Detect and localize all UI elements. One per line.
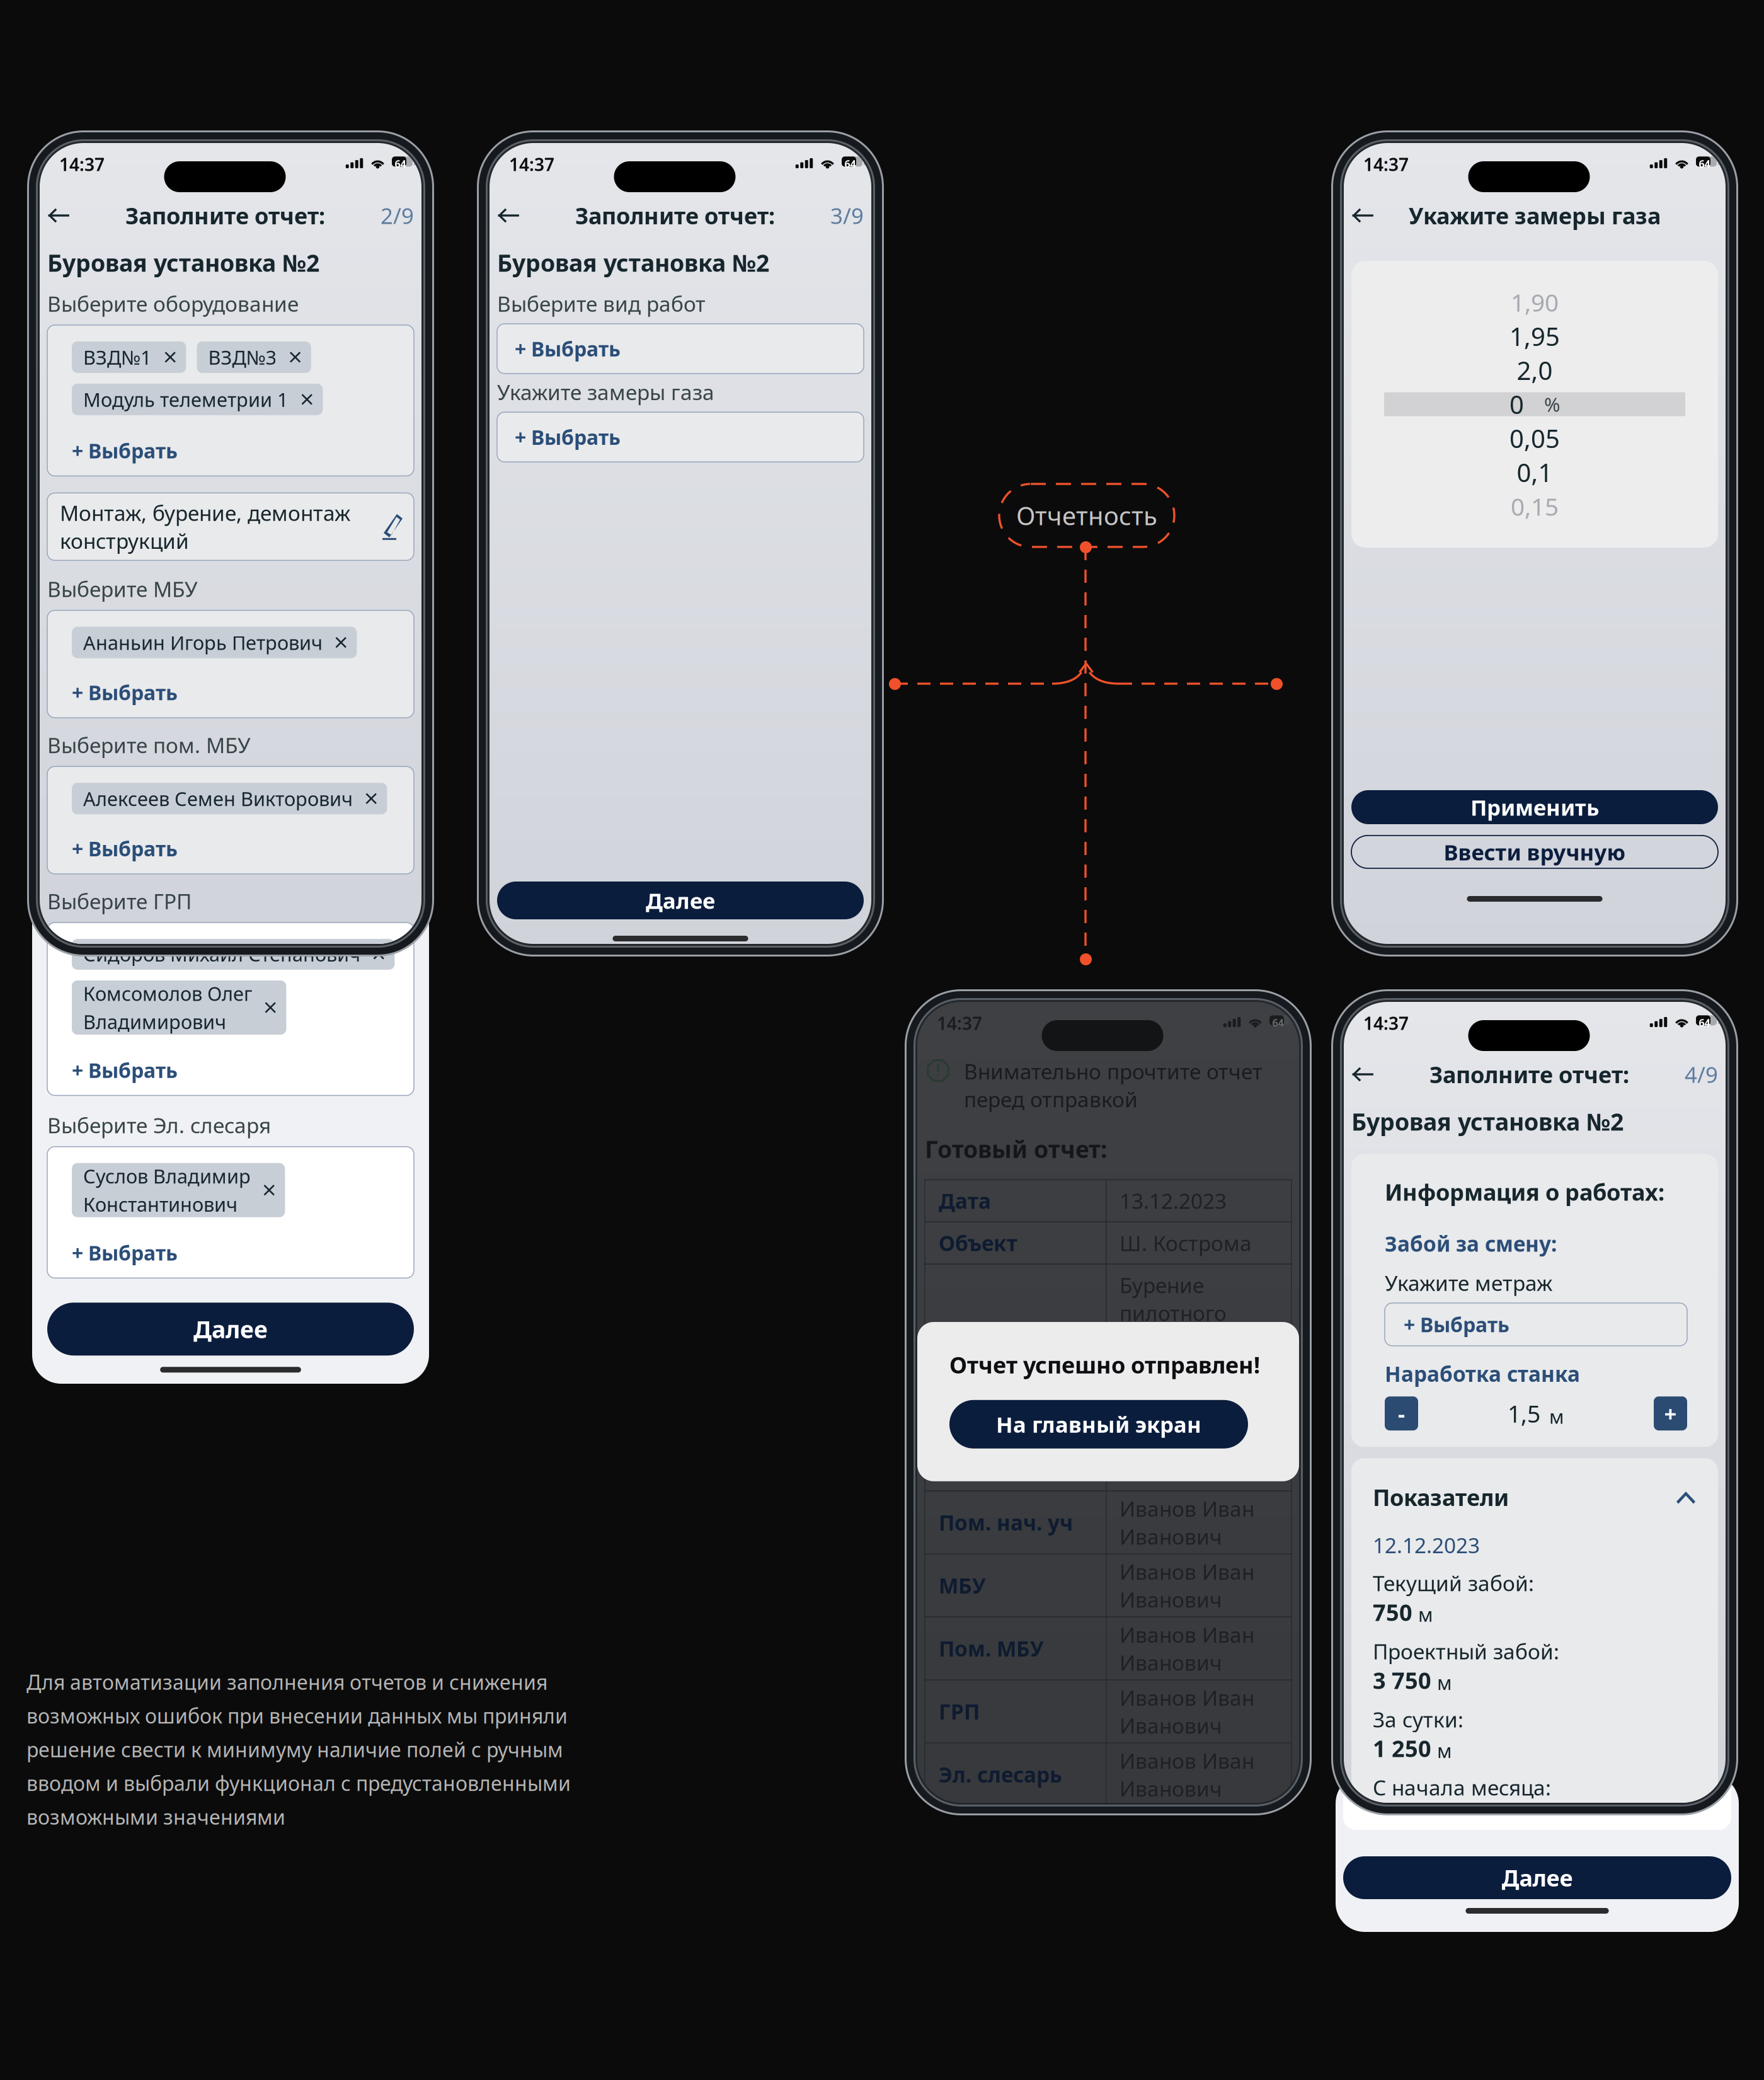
staticText: 64 <box>1272 1016 1284 1029</box>
staticText: % <box>1544 391 1560 417</box>
button[interactable]: Сидоров Михаил Степанович <box>72 938 395 970</box>
button[interactable]: Комсомолов Олег <box>72 980 250 1011</box>
button[interactable]: Назад <box>497 204 520 227</box>
staticText: Ш. Кострома <box>1119 1229 1252 1257</box>
staticText: Отчет успешно отправлен! <box>949 1350 1260 1380</box>
staticText: - <box>1398 1399 1405 1428</box>
staticText: Комсомолов Олег <box>83 970 202 1021</box>
staticText: Иванов Иван Иванович <box>1119 1621 1254 1676</box>
button[interactable]: Назад <box>1351 204 1374 227</box>
button[interactable]: + Выбрать <box>72 1057 178 1083</box>
button[interactable]: + Выбрать <box>72 835 178 862</box>
staticText: Применить <box>1470 793 1599 822</box>
staticText: 0,15 <box>1511 490 1559 522</box>
staticText: Иванов Иван Иванович <box>1119 1684 1254 1739</box>
staticText: С начала месяца: <box>1373 1773 1551 1801</box>
staticText: МБУ <box>939 1571 986 1599</box>
staticText: Модуль телеметрии 1 <box>83 387 289 412</box>
staticText: + <box>1664 1399 1677 1428</box>
staticText: Внимательно прочтите отчет перед отправк… <box>964 1057 1263 1113</box>
staticText: Заполните отчет: <box>1429 1059 1629 1089</box>
button[interactable]: Увеличить <box>1654 1396 1687 1430</box>
staticText: 15 350 <box>1373 1801 1445 1831</box>
button[interactable]: Алексеев Семен Викторович <box>72 783 387 814</box>
staticText: + Выбрать <box>72 835 178 862</box>
button[interactable]: Далее <box>47 1303 414 1356</box>
staticText: Буровая установка №2 <box>47 247 319 278</box>
button[interactable]: Далее <box>1343 1856 1731 1899</box>
staticText: 2/9 <box>381 201 414 230</box>
button[interactable]: ВЗД№3 <box>197 341 311 373</box>
button[interactable]: + Выбрать <box>497 412 864 462</box>
staticText: Ананьин Игорь Петрович <box>83 630 323 655</box>
staticText: Отчетность <box>1016 499 1157 532</box>
button[interactable]: Ананьин Игорь Петрович <box>72 627 357 658</box>
staticText: 64 <box>845 157 856 171</box>
staticText: Эл. слесарь <box>939 1761 1062 1788</box>
button[interactable]: + Выбрать <box>72 1239 178 1266</box>
staticText: Укажите замеры газа <box>497 378 714 406</box>
staticText: Забой за смену: <box>1385 1230 1557 1258</box>
staticText: Информация о работах: <box>1385 1177 1664 1207</box>
staticText: Выберите МБУ <box>47 575 198 603</box>
staticText: Готовый отчет: <box>925 1133 1107 1165</box>
staticText: Пом. МБУ <box>939 1635 1044 1662</box>
button[interactable]: Назад <box>1351 1063 1374 1086</box>
button[interactable]: Применить <box>1351 790 1718 824</box>
staticText: + Выбрать <box>72 1239 178 1266</box>
staticText: 64 <box>1699 157 1710 171</box>
button[interactable]: + Выбрать <box>72 437 178 464</box>
staticText: За сутки: <box>1373 1705 1463 1733</box>
staticText: Дата <box>939 1187 991 1215</box>
staticText: Суслов Владимир <box>83 1163 251 1189</box>
button[interactable]: + Выбрать <box>1385 1303 1687 1346</box>
staticText: 14:37 <box>509 152 554 176</box>
button[interactable]: Ввести вручную <box>1351 836 1718 868</box>
staticText: Выберите пом. МБУ <box>47 731 251 759</box>
staticText: Ввести вручную <box>1444 837 1626 866</box>
button[interactable]: Модуль телеметрии 1 <box>72 384 323 415</box>
button[interactable]: Уменьшить <box>1385 1396 1418 1430</box>
staticText: 3/9 <box>830 201 864 230</box>
staticText: 2,0 <box>1517 353 1553 387</box>
button[interactable]: ВЗД№1 <box>72 341 186 373</box>
staticText: Текущий забой: <box>1373 1569 1534 1597</box>
button[interactable]: Суслов Владимир <box>72 1163 285 1217</box>
button[interactable]: Свернуть <box>1675 1488 1697 1506</box>
button[interactable]: Комсомолов Олег <box>72 980 286 1035</box>
staticText: 14:37 <box>1363 1011 1409 1035</box>
staticText: + Выбрать <box>1404 1311 1509 1338</box>
staticText: м <box>1437 1738 1452 1763</box>
staticText: + Выбрать <box>515 424 621 450</box>
button[interactable]: + Выбрать <box>72 679 178 706</box>
staticText: Комсомолов Олег <box>83 981 252 1006</box>
staticText: ГРП <box>939 1698 980 1725</box>
staticText: 0,05 <box>1509 421 1560 455</box>
staticText: Пом. нач. уч <box>939 1508 1073 1536</box>
staticText: + Выбрать <box>72 1057 178 1083</box>
staticText: м <box>1549 1403 1564 1429</box>
staticText: Заполните отчет: <box>125 200 325 231</box>
staticText: м <box>1418 1601 1433 1627</box>
staticText: 750 <box>1373 1597 1412 1627</box>
staticText: м <box>1437 1670 1452 1695</box>
staticText: 1,90 <box>1511 286 1559 318</box>
staticText: 1,5 <box>1508 1398 1540 1429</box>
staticText: Далее <box>193 1313 268 1345</box>
staticText: + Выбрать <box>72 679 178 706</box>
staticText: Выберите вид работ <box>497 290 706 318</box>
staticText: Иванов Иван Иванович <box>1119 1747 1254 1802</box>
staticText: 14:37 <box>1363 152 1409 176</box>
staticText: 14:37 <box>59 152 105 176</box>
staticText: Выберите ГРП <box>47 887 192 915</box>
button[interactable]: + Выбрать <box>497 324 864 374</box>
staticText: ВЗД№3 <box>208 344 277 370</box>
button[interactable]: Сидоров Михаил Степанович <box>72 939 395 970</box>
button[interactable]: Назад <box>47 204 70 227</box>
staticText: 3 750 <box>1373 1665 1431 1695</box>
staticText: 64 <box>395 157 406 171</box>
staticText: Владимирович <box>83 1009 226 1034</box>
button[interactable]: На главный экран <box>949 1400 1248 1449</box>
button[interactable]: Далее <box>497 882 864 919</box>
staticText: Далее <box>646 886 715 915</box>
